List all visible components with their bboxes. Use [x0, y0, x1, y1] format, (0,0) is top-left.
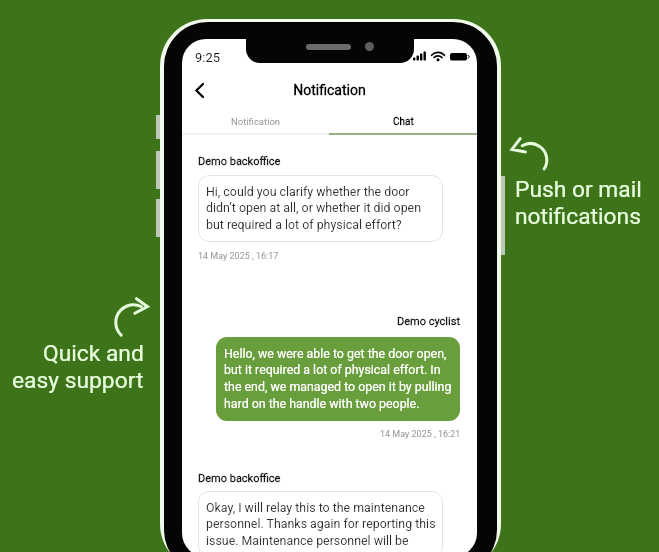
staticText: notifications — [515, 203, 641, 230]
staticText: Okay, I will relay this to the maintenan… — [206, 500, 435, 548]
button[interactable]: Chat — [329, 111, 477, 132]
staticText: Notification — [231, 116, 281, 127]
staticText: 9:25 — [195, 50, 221, 65]
staticText: Hi, could you clarify whether the door d… — [206, 184, 422, 232]
staticText: Chat — [393, 116, 414, 128]
staticText: Demo backoffice — [198, 155, 281, 168]
staticText: easy support — [12, 367, 144, 394]
button[interactable]: Notification — [182, 111, 329, 132]
staticText: 14 May 2025 , 16:21 — [380, 429, 461, 440]
staticText: Demo cyclist — [397, 315, 460, 328]
staticText: Notification — [182, 82, 477, 98]
staticText: 14 May 2025 , 16:17 — [198, 251, 279, 262]
staticText: Demo backoffice — [198, 472, 281, 485]
staticText: Hello, we were able to get the door open… — [224, 346, 452, 411]
staticText: Push or mail — [515, 176, 642, 203]
staticText: Quick and — [43, 340, 144, 367]
button[interactable]: Back — [185, 76, 213, 104]
